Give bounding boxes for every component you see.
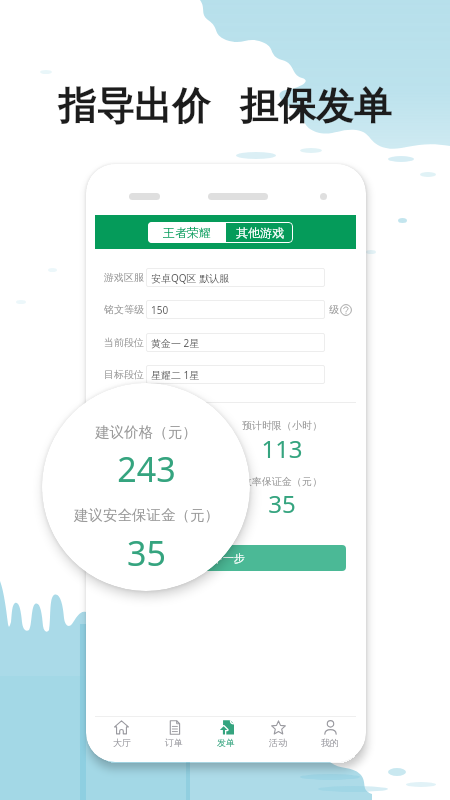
staticText: 其他游戏 bbox=[236, 225, 284, 240]
button[interactable]: 帮助 bbox=[340, 304, 352, 316]
staticText: 级 bbox=[329, 303, 339, 316]
staticText: 113 bbox=[261, 432, 303, 465]
button[interactable]: 游戏区服 bbox=[95, 262, 356, 293]
staticText: 建议安全保证金（元） bbox=[110, 475, 210, 488]
button[interactable]: 其他游戏 bbox=[226, 222, 293, 243]
button[interactable]: 我的 bbox=[304, 718, 356, 754]
button[interactable]: 当前段位 bbox=[95, 327, 356, 358]
staticText: 目标段位 bbox=[104, 368, 144, 381]
staticText: 星耀二 1星 bbox=[151, 368, 200, 382]
staticText: 发单 bbox=[217, 737, 235, 748]
button[interactable]: 发单 bbox=[200, 718, 252, 754]
staticText: 黄金一 2星 bbox=[151, 336, 200, 350]
button[interactable]: 活动 bbox=[252, 718, 304, 754]
button[interactable]: 铭文等级 bbox=[95, 294, 356, 325]
staticText: 建议安全保证金（元） bbox=[74, 506, 219, 524]
staticText: 我的 bbox=[321, 737, 339, 748]
staticText: 效率保证金（元） bbox=[242, 475, 322, 488]
staticText: 铭文等级 bbox=[104, 303, 144, 316]
staticText: 活动 bbox=[269, 737, 287, 748]
staticText: 王者荣耀 bbox=[163, 225, 211, 240]
button[interactable]: 订单 bbox=[148, 718, 200, 754]
staticText: 大厅 bbox=[113, 737, 131, 748]
staticText: 35 bbox=[146, 487, 174, 520]
staticText: 建议价格（元） bbox=[95, 423, 197, 441]
staticText: 指导出价 担保发单 bbox=[58, 78, 392, 130]
button[interactable]: 下一步 bbox=[110, 545, 346, 571]
staticText: 35 bbox=[127, 530, 166, 576]
staticText: 订单 bbox=[165, 737, 183, 748]
staticText: 下一步 bbox=[212, 551, 245, 565]
staticText: 当前段位 bbox=[104, 336, 144, 349]
staticText: 150 bbox=[151, 303, 169, 317]
staticText: 35 bbox=[268, 487, 296, 520]
staticText: 游戏区服 bbox=[104, 271, 144, 284]
staticText: 建议价格（元） bbox=[125, 419, 195, 432]
staticText: 243 bbox=[139, 432, 181, 465]
staticText: 预计时限（小时） bbox=[242, 419, 322, 432]
button[interactable]: 王者荣耀 bbox=[148, 222, 226, 243]
button[interactable]: 目标段位 bbox=[95, 359, 356, 390]
staticText: 安卓QQ区 默认服 bbox=[151, 271, 230, 285]
staticText: 243 bbox=[117, 446, 176, 492]
button[interactable]: 大厅 bbox=[95, 718, 148, 754]
